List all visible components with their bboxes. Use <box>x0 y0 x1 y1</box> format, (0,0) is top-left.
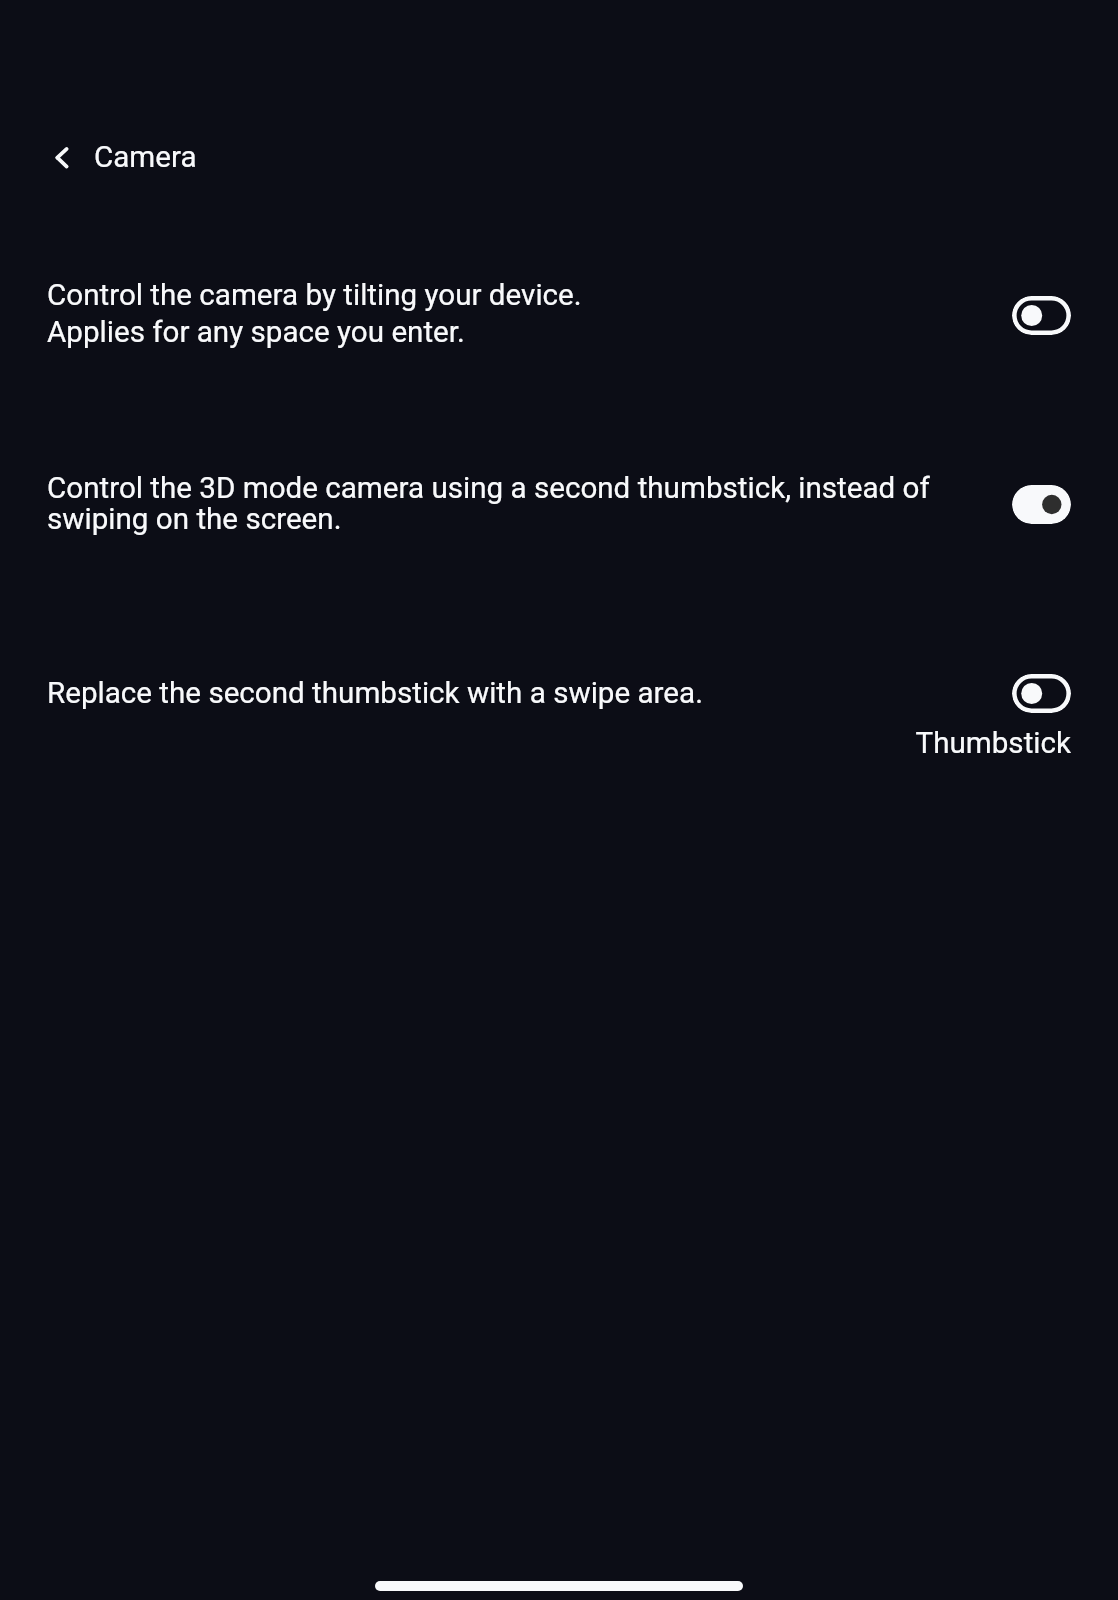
staticText: Control the 3D mode camera using a secon… <box>47 471 930 536</box>
button[interactable]: Setting switch, off <box>1012 296 1071 335</box>
button[interactable]: Navigate back <box>37 133 86 182</box>
button[interactable]: Control the camera by tilting your devic… <box>0 262 1118 372</box>
button[interactable]: Replace the second thumbstick with a swi… <box>0 660 1118 770</box>
button[interactable]: Control the 3D mode camera using a secon… <box>0 458 1118 554</box>
staticText: Thumbstick <box>700 726 1071 761</box>
button[interactable]: Camera <box>88 128 208 186</box>
staticText: Camera <box>94 140 197 175</box>
staticText: Replace the second thumbstick with a swi… <box>47 676 703 711</box>
button[interactable]: Setting switch, on <box>1012 485 1071 524</box>
staticText: Applies for any space you enter. <box>47 315 465 350</box>
staticText: Control the camera by tilting your devic… <box>47 278 582 313</box>
button[interactable]: Setting switch, off <box>1012 674 1071 713</box>
